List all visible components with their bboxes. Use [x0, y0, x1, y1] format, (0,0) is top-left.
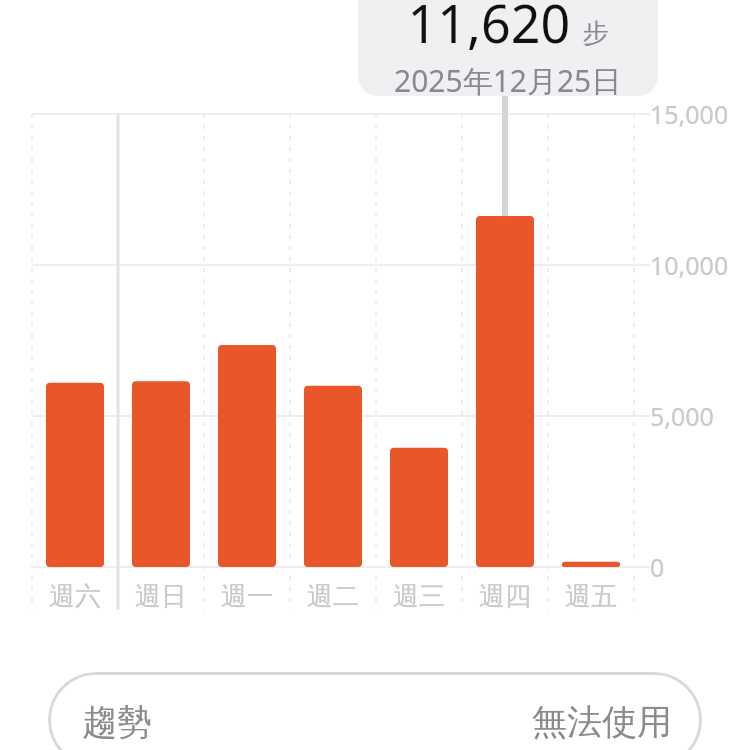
button[interactable] — [48, 672, 702, 750]
other: Selected day 11,620 steps — [358, 0, 658, 96]
